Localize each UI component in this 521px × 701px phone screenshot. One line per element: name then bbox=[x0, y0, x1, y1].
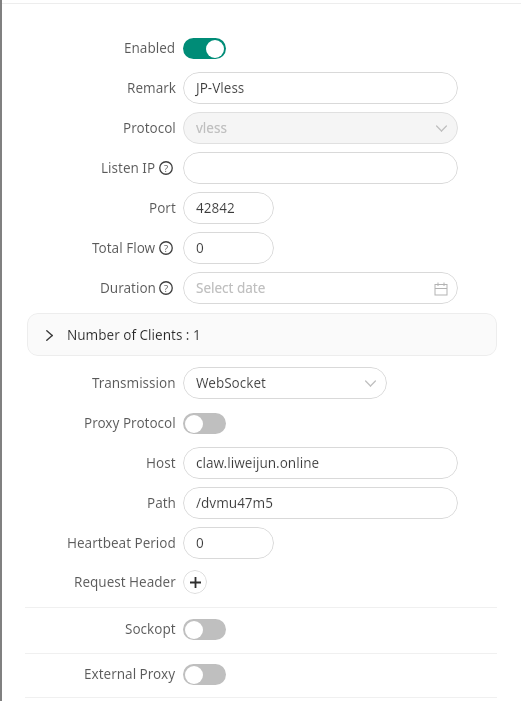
staticText: 0 bbox=[196, 534, 204, 552]
button[interactable]: Toggle off bbox=[183, 413, 226, 434]
button[interactable]: Toggle off bbox=[183, 619, 226, 640]
button[interactable] bbox=[183, 152, 458, 184]
staticText: ? bbox=[164, 242, 169, 255]
staticText: Sockopt bbox=[125, 620, 176, 638]
staticText: vless bbox=[196, 119, 227, 137]
button[interactable]: WebSocket bbox=[183, 367, 387, 399]
staticText: /dvmu47m5 bbox=[196, 494, 273, 512]
button[interactable]: /dvmu47m5 bbox=[183, 487, 458, 519]
staticText: Transmission bbox=[92, 374, 176, 392]
staticText: Number of Clients : 1 bbox=[67, 326, 201, 344]
staticText: Proxy Protocol bbox=[84, 414, 176, 432]
staticText: WebSocket bbox=[196, 374, 266, 392]
staticText: Port bbox=[149, 199, 176, 217]
staticText: 0 bbox=[196, 239, 204, 257]
staticText: Listen IP bbox=[101, 159, 156, 177]
button[interactable]: Toggle on bbox=[183, 38, 226, 59]
button[interactable]: JP-Vless bbox=[183, 72, 458, 104]
button[interactable]: claw.liweijun.online bbox=[183, 447, 458, 479]
staticText: Select date bbox=[196, 279, 266, 297]
staticText: claw.liweijun.online bbox=[196, 454, 320, 472]
button[interactable]: Number of Clients : 1 bbox=[27, 313, 497, 356]
button[interactable]: 0 bbox=[183, 232, 274, 264]
button[interactable]: Add request header bbox=[183, 570, 207, 594]
button[interactable]: Toggle off bbox=[183, 664, 226, 685]
staticText: Duration bbox=[100, 279, 156, 297]
staticText: 42842 bbox=[196, 199, 235, 217]
staticText: Total Flow bbox=[92, 239, 156, 257]
button[interactable]: 0 bbox=[183, 527, 274, 559]
staticText: JP-Vless bbox=[196, 79, 245, 97]
button[interactable]: vless bbox=[183, 112, 458, 144]
button[interactable]: Select date bbox=[183, 272, 458, 304]
staticText: External Proxy bbox=[84, 665, 176, 683]
staticText: Remark bbox=[127, 79, 176, 97]
staticText: ? bbox=[164, 162, 169, 175]
staticText: Host bbox=[146, 454, 176, 472]
staticText: ? bbox=[164, 282, 169, 295]
staticText: Heartbeat Period bbox=[67, 534, 176, 552]
staticText: Protocol bbox=[123, 119, 176, 137]
staticText: Path bbox=[147, 494, 176, 512]
staticText: Request Header bbox=[74, 573, 176, 591]
staticText: Enabled bbox=[124, 39, 176, 57]
button[interactable]: 42842 bbox=[183, 192, 274, 224]
